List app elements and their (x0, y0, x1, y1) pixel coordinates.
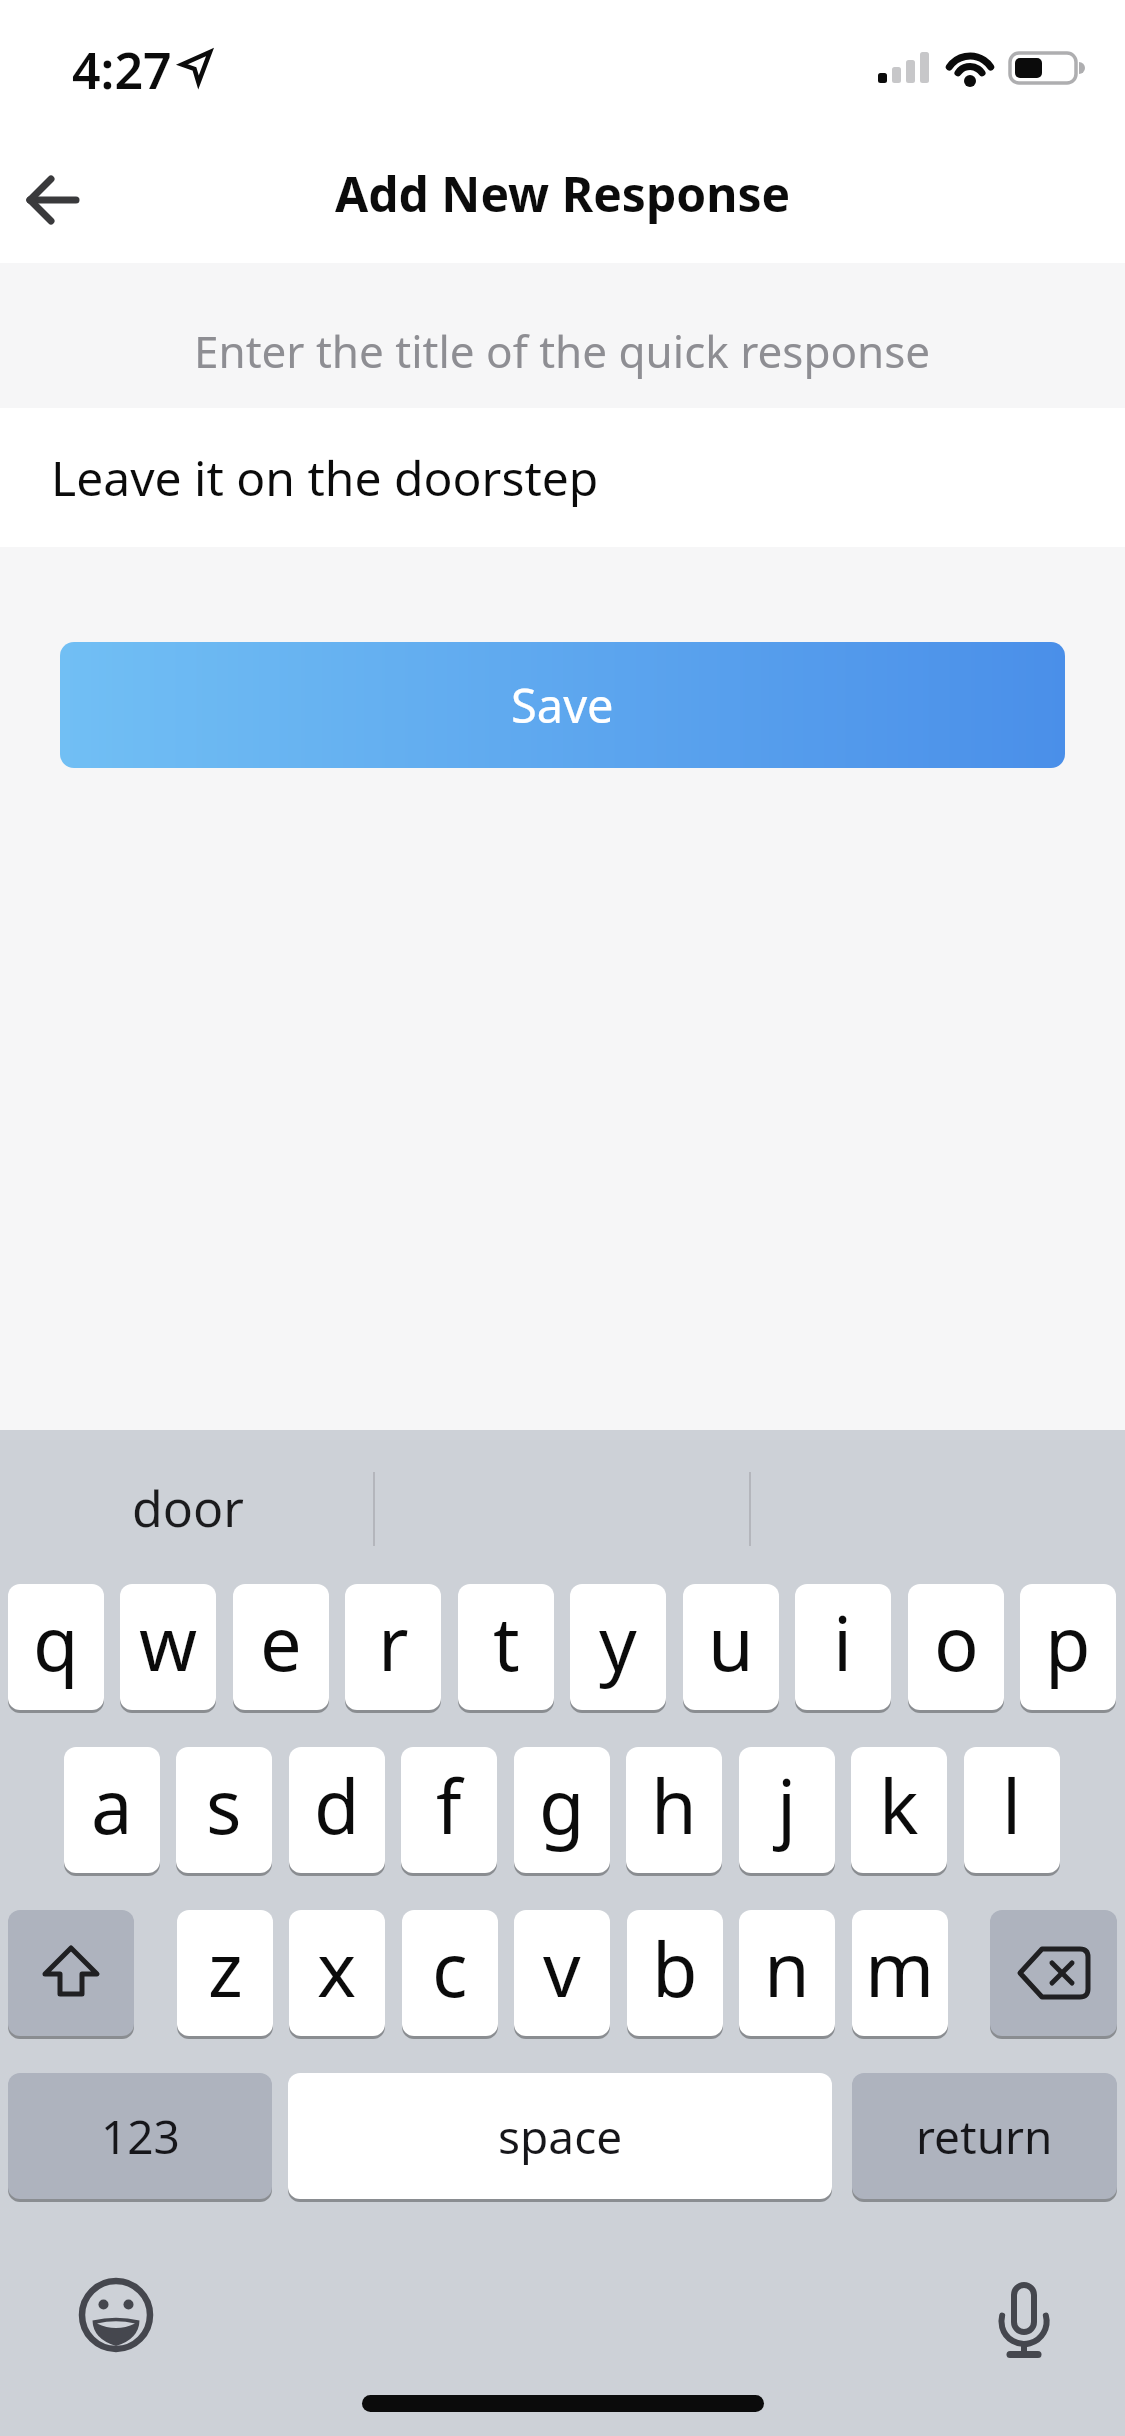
staticText: z (208, 1918, 243, 2019)
button[interactable]: j (739, 1747, 835, 1873)
staticText: q (33, 1592, 79, 1693)
staticText: s (206, 1755, 242, 1856)
staticText: Leave it on the doorstep (51, 445, 599, 510)
button[interactable]: t (458, 1584, 554, 1710)
button[interactable]: r (345, 1584, 441, 1710)
button[interactable] (10, 165, 100, 235)
button[interactable]: x (289, 1910, 385, 2036)
staticText: y (599, 1592, 637, 1693)
button[interactable]: Leave it on the doorstep (0, 408, 1125, 547)
staticText: d (314, 1755, 360, 1856)
staticText: Add New Response (335, 161, 791, 226)
staticText: n (764, 1918, 810, 2019)
button[interactable] (974, 2268, 1074, 2368)
button[interactable]: z (177, 1910, 273, 2036)
button[interactable]: return (852, 2073, 1117, 2199)
button[interactable]: k (851, 1747, 947, 1873)
button[interactable] (750, 1430, 1125, 1585)
button[interactable] (375, 1430, 750, 1585)
staticText: j (777, 1755, 797, 1856)
button[interactable] (990, 1910, 1117, 2036)
button[interactable]: s (176, 1747, 272, 1873)
staticText: Enter the title of the quick response (194, 321, 931, 381)
staticText: k (879, 1755, 919, 1856)
staticText: f (436, 1755, 462, 1856)
button[interactable]: i (795, 1584, 891, 1710)
staticText: r (378, 1592, 409, 1693)
button[interactable] (66, 2265, 166, 2365)
button[interactable]: Enter the title of the quick response (0, 263, 1125, 408)
staticText: x (317, 1918, 357, 2019)
button[interactable]: c (402, 1910, 498, 2036)
button[interactable]: n (739, 1910, 835, 2036)
staticText: o (934, 1592, 979, 1693)
staticText: p (1045, 1592, 1091, 1693)
button[interactable]: g (514, 1747, 610, 1873)
staticText: e (260, 1592, 302, 1693)
button[interactable]: o (908, 1584, 1004, 1710)
staticText: w (139, 1592, 198, 1693)
button[interactable]: h (626, 1747, 722, 1873)
button[interactable]: w (120, 1584, 216, 1710)
button[interactable]: door (0, 1430, 375, 1585)
button[interactable]: m (852, 1910, 948, 2036)
staticText: b (652, 1918, 698, 2019)
staticText: 4:27 (72, 36, 172, 96)
staticText: Save (511, 673, 614, 737)
button[interactable]: b (627, 1910, 723, 2036)
staticText: a (91, 1755, 133, 1856)
button[interactable]: y (570, 1584, 666, 1710)
button[interactable]: space (288, 2073, 832, 2199)
button[interactable]: v (514, 1910, 610, 2036)
staticText: i (833, 1592, 853, 1693)
button[interactable]: u (683, 1584, 779, 1710)
button[interactable]: a (64, 1747, 160, 1873)
button[interactable]: p (1020, 1584, 1116, 1710)
staticText: u (708, 1592, 754, 1693)
staticText: 123 (101, 2105, 180, 2168)
button[interactable]: l (964, 1747, 1060, 1873)
button[interactable]: d (289, 1747, 385, 1873)
staticText: return (916, 2105, 1053, 2168)
staticText: c (432, 1918, 468, 2019)
button[interactable]: f (401, 1747, 497, 1873)
staticText: space (498, 2105, 623, 2168)
staticText: g (539, 1755, 585, 1856)
staticText: h (651, 1755, 697, 1856)
button[interactable] (8, 1910, 134, 2036)
staticText: m (865, 1918, 935, 2019)
staticText: door (132, 1474, 244, 1542)
button[interactable]: Save (60, 642, 1065, 768)
staticText: v (543, 1918, 581, 2019)
button[interactable]: q (8, 1584, 104, 1710)
button[interactable]: e (233, 1584, 329, 1710)
button[interactable]: 123 (8, 2073, 272, 2199)
staticText: l (1002, 1755, 1022, 1856)
staticText: t (493, 1592, 520, 1693)
